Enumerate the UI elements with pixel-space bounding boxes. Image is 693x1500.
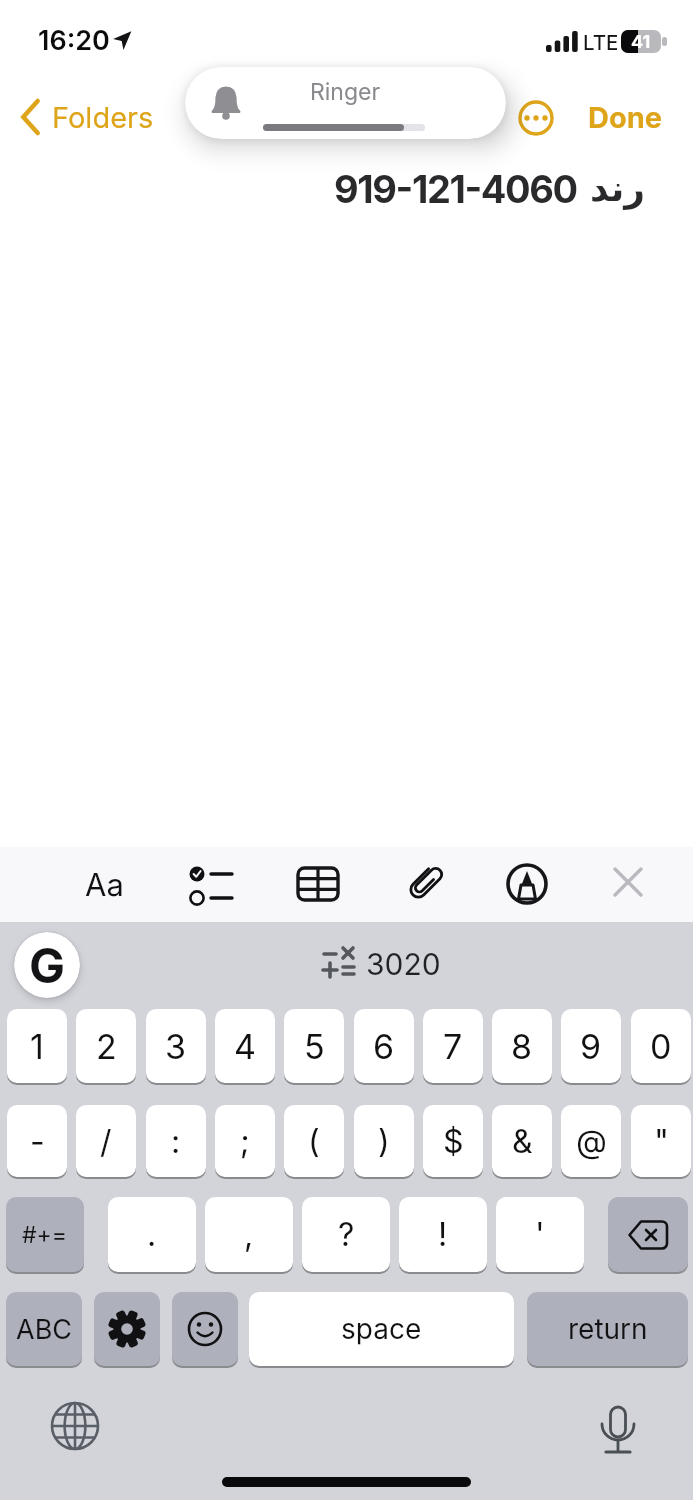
- staticText: return: [568, 1312, 648, 1346]
- button[interactable]: ,: [205, 1197, 293, 1272]
- staticText: !: [438, 1215, 448, 1254]
- button[interactable]: [595, 1395, 641, 1457]
- button[interactable]: [172, 1292, 238, 1366]
- staticText: ): [378, 1122, 390, 1161]
- staticText: 16:20: [38, 24, 110, 57]
- staticText: @: [576, 1122, 607, 1161]
- staticText: 0: [650, 1026, 672, 1067]
- button[interactable]: 7: [423, 1009, 483, 1083]
- button[interactable]: [184, 864, 236, 906]
- button[interactable]: 0: [631, 1009, 691, 1083]
- staticText: ABC: [16, 1313, 73, 1346]
- staticText: (: [308, 1122, 320, 1161]
- button[interactable]: ABC: [6, 1292, 82, 1366]
- button[interactable]: 2: [76, 1009, 136, 1083]
- button[interactable]: 6: [354, 1009, 414, 1083]
- button[interactable]: Done: [588, 100, 663, 135]
- staticText: ": [654, 1122, 669, 1161]
- staticText: ?: [338, 1215, 355, 1254]
- staticText: Ringer: [310, 78, 381, 106]
- staticText: -: [30, 1122, 45, 1161]
- staticText: 7: [443, 1026, 463, 1067]
- button[interactable]: [506, 863, 548, 905]
- button[interactable]: [296, 863, 340, 905]
- staticText: 8: [511, 1026, 533, 1067]
- button[interactable]: Aa: [78, 865, 130, 905]
- staticText: ,: [244, 1215, 254, 1254]
- button[interactable]: ': [496, 1197, 584, 1272]
- button[interactable]: ": [631, 1105, 691, 1177]
- button[interactable]: /: [76, 1105, 136, 1177]
- staticText: 9: [580, 1026, 602, 1067]
- staticText: 4: [234, 1026, 256, 1067]
- staticText: space: [341, 1312, 422, 1346]
- staticText: 3: [165, 1026, 187, 1067]
- button[interactable]: #+=: [6, 1197, 84, 1272]
- staticText: ': [535, 1215, 545, 1254]
- button[interactable]: [94, 1292, 160, 1366]
- button[interactable]: 9: [561, 1009, 621, 1083]
- button[interactable]: space: [249, 1292, 514, 1366]
- button[interactable]: [518, 100, 554, 136]
- button[interactable]: &: [492, 1105, 552, 1177]
- button[interactable]: 4: [215, 1009, 275, 1083]
- staticText: 41: [631, 31, 651, 53]
- staticText: #+=: [22, 1221, 68, 1249]
- staticText: 2: [96, 1026, 117, 1067]
- button[interactable]: :: [146, 1105, 206, 1177]
- staticText: $: [443, 1122, 464, 1161]
- staticText: /: [100, 1122, 112, 1161]
- button[interactable]: $: [423, 1105, 483, 1177]
- button[interactable]: @: [561, 1105, 621, 1177]
- staticText: 3020: [366, 946, 441, 982]
- button[interactable]: !: [399, 1197, 487, 1272]
- button[interactable]: return: [527, 1292, 688, 1366]
- button[interactable]: G: [14, 932, 80, 998]
- button[interactable]: [608, 1197, 688, 1272]
- button[interactable]: [310, 938, 440, 990]
- staticText: ;: [240, 1122, 250, 1161]
- button[interactable]: [612, 866, 644, 898]
- button[interactable]: 1: [7, 1009, 67, 1083]
- staticText: Folders: [52, 100, 154, 135]
- staticText: 5: [304, 1026, 325, 1067]
- staticText: Aa: [85, 866, 124, 904]
- button[interactable]: .: [108, 1197, 196, 1272]
- button[interactable]: [48, 1399, 102, 1453]
- staticText: &: [512, 1122, 533, 1161]
- button[interactable]: -: [7, 1105, 67, 1177]
- button[interactable]: 8: [492, 1009, 552, 1083]
- staticText: G: [29, 936, 66, 994]
- staticText: LTE: [583, 30, 619, 55]
- button[interactable]: 3: [146, 1009, 206, 1083]
- button[interactable]: ): [354, 1105, 414, 1177]
- staticText: 919-121-4060: [334, 166, 577, 212]
- staticText: :: [171, 1122, 181, 1161]
- button[interactable]: Folders: [18, 98, 154, 136]
- staticText: 1: [30, 1026, 44, 1067]
- button[interactable]: [402, 862, 446, 906]
- staticText: .: [147, 1215, 157, 1254]
- button[interactable]: ;: [215, 1105, 275, 1177]
- staticText: رند: [590, 168, 646, 210]
- button[interactable]: ?: [302, 1197, 390, 1272]
- button[interactable]: 5: [284, 1009, 344, 1083]
- staticText: 6: [373, 1026, 395, 1067]
- button[interactable]: (: [284, 1105, 344, 1177]
